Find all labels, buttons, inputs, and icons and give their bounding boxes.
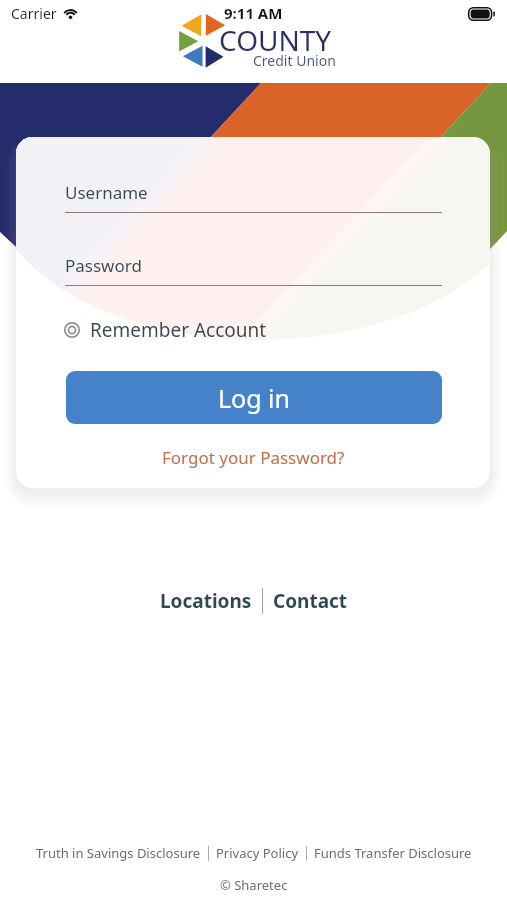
staticText: Truth in Savings Disclosure	[36, 844, 201, 862]
staticText: Funds Transfer Disclosure	[314, 844, 472, 862]
staticText: Forgot your Password?	[162, 446, 345, 469]
button[interactable]: Forgot your Password?	[156, 440, 351, 475]
staticText: Carrier	[11, 4, 57, 23]
button[interactable]: Funds Transfer Disclosure	[307, 841, 479, 865]
staticText: Contact	[273, 588, 348, 614]
staticText: © Sharetec	[220, 876, 288, 894]
button[interactable]: Contact	[263, 582, 358, 620]
staticText: Locations	[160, 588, 252, 614]
staticText: Log in	[218, 381, 291, 415]
staticText: Privacy Policy	[216, 844, 299, 862]
staticText: 9:11 AM	[224, 3, 283, 23]
button[interactable]: Remember Account	[61, 317, 267, 343]
staticText: Username	[65, 181, 148, 204]
button[interactable]: Log in	[66, 371, 442, 424]
staticText: COUNTY	[219, 21, 332, 59]
staticText: Remember Account	[90, 317, 267, 343]
staticText: Password	[65, 254, 142, 277]
button[interactable]: Locations	[150, 582, 262, 620]
button[interactable]: Truth in Savings Disclosure	[29, 841, 208, 865]
staticText: Credit Union	[253, 51, 336, 70]
button[interactable]: Privacy Policy	[209, 841, 306, 865]
